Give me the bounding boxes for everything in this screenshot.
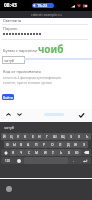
- staticText: Ь: [60, 150, 63, 155]
- button[interactable]: чотуб: [2, 56, 25, 64]
- button[interactable]: В: [18, 141, 25, 148]
- staticText: Светлана: [3, 18, 21, 23]
- button[interactable]: [44, 113, 64, 116]
- button[interactable]: Т: [49, 149, 57, 156]
- button[interactable]: Б: [65, 149, 73, 156]
- staticText: Э: [83, 142, 86, 147]
- staticText: .: [73, 159, 74, 163]
- staticText: Войти: [3, 95, 13, 99]
- staticText: если нет, просто оставьте пустым: [3, 81, 52, 85]
- staticText: Ы: [13, 142, 16, 147]
- staticText: У: [17, 134, 20, 139]
- button[interactable]: Home: [6, 186, 12, 192]
- staticText: В: [20, 142, 23, 147]
- staticText: С: [28, 150, 31, 155]
- staticText: cabinet.example.ru: [31, 12, 62, 17]
- staticText: К: [24, 134, 27, 139]
- button[interactable]: Щ: [59, 133, 67, 140]
- button[interactable]: З: [67, 133, 75, 140]
- button[interactable]: Ю: [73, 149, 81, 156]
- button[interactable]: Ъ: [83, 133, 91, 140]
- staticText: Буквы с картинки: [3, 48, 37, 53]
- button[interactable]: С: [25, 149, 33, 156]
- button[interactable]: 123: [1, 157, 14, 164]
- button[interactable]: Е: [29, 133, 36, 140]
- button[interactable]: П: [32, 141, 40, 148]
- staticText: Ъ: [86, 134, 89, 139]
- button[interactable]: Ж: [72, 141, 80, 148]
- button[interactable]: Ы: [11, 141, 18, 148]
- staticText: Б: [68, 150, 71, 155]
- button[interactable]: Ц: [8, 133, 15, 140]
- staticText: Г: [46, 134, 48, 139]
- button[interactable]: Ф: [4, 141, 11, 148]
- staticText: З: [70, 134, 72, 139]
- button[interactable]: .: [68, 157, 78, 164]
- staticText: И: [44, 150, 47, 155]
- button[interactable]: Next field: [16, 111, 23, 118]
- staticText: П: [35, 142, 38, 147]
- staticText: Ш: [53, 134, 57, 139]
- staticText: Х: [78, 134, 80, 139]
- button[interactable]: Н: [36, 133, 43, 140]
- button[interactable]: Ш: [51, 133, 59, 140]
- staticText: Д: [67, 142, 70, 147]
- button[interactable]: emoji: [14, 157, 24, 164]
- staticText: Л: [59, 142, 62, 147]
- button[interactable]: У: [15, 133, 22, 140]
- button[interactable]: back: [81, 149, 91, 156]
- staticText: Пароль: [3, 26, 18, 31]
- button[interactable]: Previous field: [5, 111, 12, 118]
- staticText: чотуб: [4, 125, 14, 130]
- staticText: М: [35, 150, 39, 155]
- staticText: Ф: [6, 142, 9, 147]
- staticText: 15:23: [37, 3, 48, 8]
- button[interactable]: Я: [10, 149, 17, 156]
- staticText: Щ: [61, 134, 65, 139]
- button[interactable]: Д: [64, 141, 72, 148]
- button[interactable]: Л: [56, 141, 64, 148]
- staticText: Ч: [20, 150, 23, 155]
- button[interactable]: enter: [78, 157, 91, 164]
- staticText: А: [27, 142, 30, 147]
- button[interactable]: А: [25, 141, 32, 148]
- button[interactable]: Войти: [2, 94, 14, 100]
- staticText: Ж: [74, 142, 78, 147]
- button[interactable]: Г: [43, 133, 51, 140]
- staticText: чоиб: [38, 42, 64, 56]
- button[interactable]: Ч: [17, 149, 25, 156]
- staticText: если есть 2-факторная аутентификация: [3, 76, 61, 80]
- button[interactable]: Done: [77, 111, 85, 119]
- staticText: Т: [52, 150, 54, 155]
- button[interactable]: О: [48, 141, 56, 148]
- button[interactable]: К: [22, 133, 29, 140]
- staticText: 123: [5, 159, 10, 163]
- button[interactable]: Р: [40, 141, 48, 148]
- button[interactable]: Й: [1, 133, 8, 140]
- staticText: чотуб: [4, 58, 14, 63]
- staticText: Н: [38, 134, 41, 139]
- button[interactable]: И: [41, 149, 49, 156]
- button[interactable]: Э: [80, 141, 88, 148]
- staticText: Е: [32, 134, 34, 139]
- staticText: Я: [12, 150, 15, 155]
- button[interactable]: М: [33, 149, 41, 156]
- staticText: 08:43: [4, 2, 17, 9]
- staticText: Ц: [10, 134, 13, 139]
- staticText: Код от приложения: [3, 69, 41, 74]
- button[interactable]: shift: [1, 149, 10, 156]
- staticText: О: [51, 142, 54, 147]
- button[interactable]: Х: [75, 133, 83, 140]
- staticText: Й: [3, 134, 6, 139]
- staticText: Ю: [75, 150, 79, 155]
- staticText: Р: [43, 142, 46, 147]
- button[interactable]: Ь: [57, 149, 65, 156]
